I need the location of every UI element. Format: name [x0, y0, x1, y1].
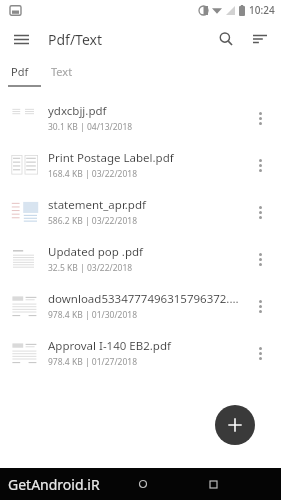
- button[interactable]: Search: [209, 22, 243, 56]
- button[interactable]: Add: [215, 405, 255, 445]
- staticText: Text: [51, 64, 73, 79]
- staticText: 168.4 KB | 03/22/2018: [48, 168, 138, 180]
- button[interactable]: More options: [243, 195, 277, 229]
- button[interactable]: More options: [243, 242, 277, 276]
- button[interactable]: Recents: [201, 472, 225, 496]
- button[interactable]: Home: [131, 472, 155, 496]
- button[interactable]: Pdf: [0, 58, 40, 84]
- button[interactable]: More options: [243, 289, 277, 323]
- button[interactable]: More options: [243, 101, 277, 135]
- button[interactable]: ydxcbjj.pdf: [0, 94, 281, 141]
- button[interactable]: statement_apr.pdf: [0, 188, 281, 235]
- staticText: 978.4 KB | 01/27/2018: [48, 356, 138, 368]
- staticText: Pdf/Text: [48, 30, 102, 49]
- staticText: ydxcbjj.pdf: [48, 103, 107, 119]
- staticText: Approval I-140 EB2.pdf: [48, 338, 171, 354]
- button[interactable]: Text: [40, 58, 84, 84]
- staticText: download5334777496315796372.pdf: [48, 291, 243, 307]
- staticText: Print Postage Label.pdf: [48, 150, 174, 166]
- button[interactable]: More options: [243, 336, 277, 370]
- button[interactable]: download5334777496315796372.pdf: [0, 282, 281, 329]
- button[interactable]: Print Postage Label.pdf: [0, 141, 281, 188]
- staticText: 32.5 KB | 03/22/2018: [48, 262, 133, 274]
- staticText: 10:24: [249, 3, 275, 17]
- button[interactable]: More options: [243, 148, 277, 182]
- button[interactable]: Updated pop .pdf: [0, 235, 281, 282]
- button[interactable]: Open navigation menu: [4, 22, 38, 56]
- staticText: 586.2 KB | 03/22/2018: [48, 215, 138, 227]
- button[interactable]: Approval I-140 EB2.pdf: [0, 329, 281, 376]
- staticText: Updated pop .pdf: [48, 244, 143, 260]
- staticText: statement_apr.pdf: [48, 197, 146, 213]
- staticText: Pdf: [11, 64, 29, 79]
- staticText: GetAndroid.iR: [8, 475, 100, 494]
- staticText: 978.4 KB | 01/30/2018: [48, 309, 138, 321]
- staticText: 30.1 KB | 04/13/2018: [48, 121, 133, 133]
- button[interactable]: Sort: [243, 22, 277, 56]
